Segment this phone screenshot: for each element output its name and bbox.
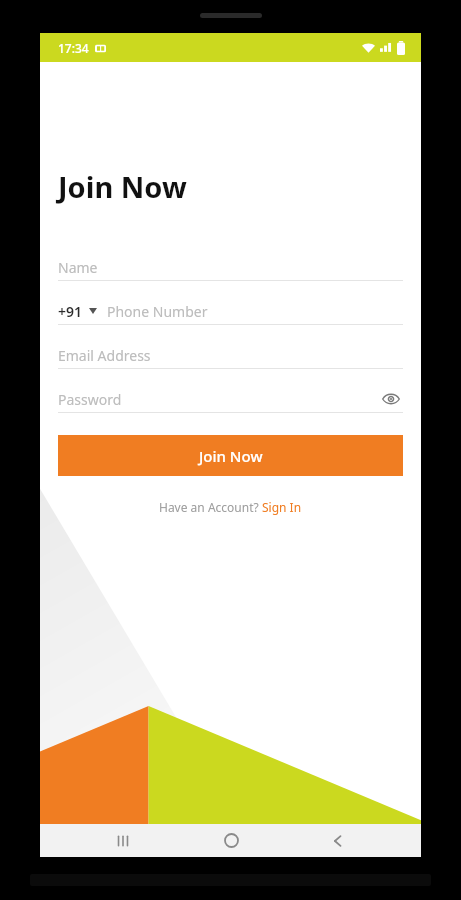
staticText: Email Address bbox=[58, 346, 151, 365]
button[interactable]: Have an Account? bbox=[58, 499, 403, 515]
staticText: Join Now bbox=[199, 446, 263, 466]
button[interactable]: +91 bbox=[58, 298, 403, 325]
button[interactable]: Show password bbox=[379, 387, 403, 411]
staticText: 17:34 bbox=[58, 40, 89, 56]
button[interactable]: Password bbox=[58, 386, 403, 412]
staticText: Join Now bbox=[58, 167, 187, 206]
staticText: Have an Account? bbox=[159, 499, 262, 515]
button[interactable]: Join Now bbox=[58, 435, 403, 476]
staticText: Name bbox=[58, 258, 98, 277]
button[interactable]: Recent apps bbox=[99, 824, 147, 857]
staticText: Sign In bbox=[262, 499, 302, 515]
button[interactable]: Back bbox=[314, 824, 362, 857]
button[interactable]: Home bbox=[207, 824, 255, 857]
staticText: Phone Number bbox=[107, 302, 208, 321]
staticText: Password bbox=[58, 390, 379, 409]
staticText: +91 bbox=[58, 302, 83, 321]
button[interactable]: Email Address bbox=[58, 342, 403, 369]
button[interactable]: Name bbox=[58, 254, 403, 281]
